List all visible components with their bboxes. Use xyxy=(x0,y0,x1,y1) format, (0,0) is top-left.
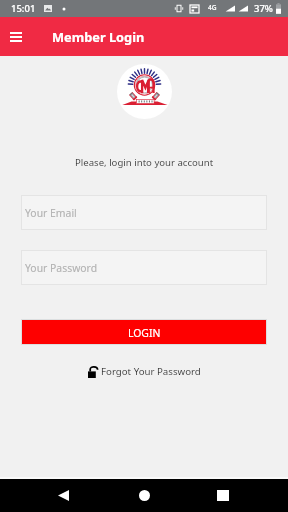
button[interactable]: Your Email xyxy=(21,195,267,230)
staticText: Please, login into your account xyxy=(75,156,214,169)
button[interactable]: Recent apps xyxy=(205,479,241,512)
button[interactable]: Back xyxy=(45,479,81,512)
button[interactable]: Forgot Your Password xyxy=(88,365,201,378)
staticText: 37% xyxy=(254,2,273,15)
staticText: Your Password xyxy=(25,261,98,275)
staticText: Your Email xyxy=(25,206,77,220)
button[interactable]: Home xyxy=(126,479,162,512)
staticText: LOGIN xyxy=(128,326,161,340)
button[interactable]: Open navigation menu xyxy=(2,23,30,51)
staticText: Forgot Your Password xyxy=(101,365,201,378)
button[interactable]: Your Password xyxy=(21,250,267,285)
button[interactable]: LOGIN xyxy=(21,319,267,345)
staticText: 15:01 xyxy=(11,2,36,15)
staticText: Member Login xyxy=(52,28,145,45)
staticText: 4G xyxy=(208,3,217,12)
